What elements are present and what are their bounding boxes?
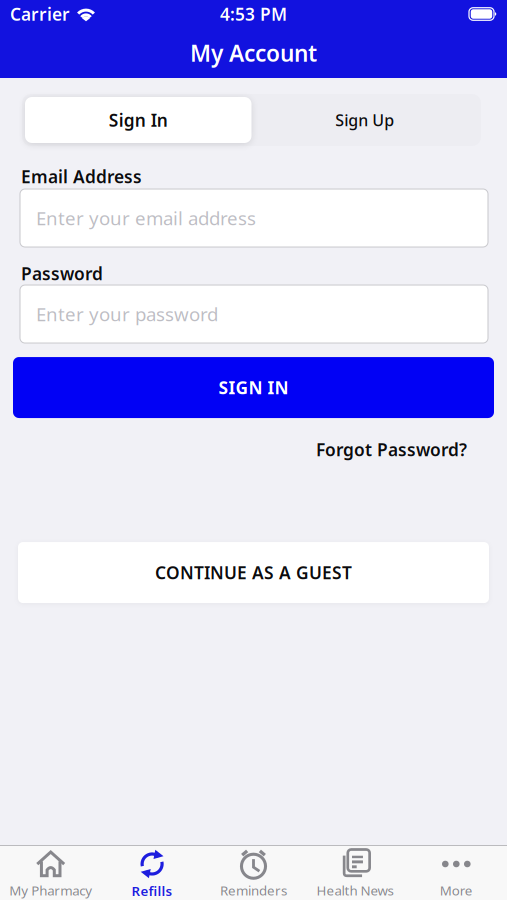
- button[interactable]: CONTINUE AS A GUEST: [18, 542, 489, 603]
- button[interactable]: More: [406, 846, 507, 899]
- staticText: Reminders: [220, 881, 287, 899]
- button[interactable]: Health News: [304, 846, 406, 899]
- staticText: My Pharmacy: [9, 881, 92, 899]
- staticText: Refills: [132, 882, 173, 900]
- staticText: CONTINUE AS A GUEST: [155, 561, 352, 584]
- staticText: Email Address: [21, 165, 142, 188]
- staticText: Carrier: [10, 2, 70, 25]
- staticText: 4:53 PM: [220, 2, 287, 25]
- button[interactable]: Sign In: [25, 97, 251, 143]
- button[interactable]: Sign Up: [251, 97, 478, 143]
- staticText: My Account: [190, 38, 317, 68]
- staticText: SIGN IN: [218, 376, 288, 399]
- staticText: Health News: [316, 881, 393, 899]
- button[interactable]: SIGN IN: [13, 357, 494, 418]
- staticText: Enter your email address: [36, 206, 256, 230]
- button[interactable]: My Pharmacy: [0, 846, 101, 899]
- staticText: Sign In: [109, 108, 168, 131]
- staticText: Password: [21, 262, 103, 285]
- staticText: Forgot Password?: [316, 438, 467, 461]
- button[interactable]: Forgot Password?: [316, 438, 467, 461]
- button[interactable]: Refills: [101, 846, 203, 900]
- staticText: More: [440, 881, 473, 899]
- button[interactable]: Reminders: [203, 846, 304, 899]
- staticText: Enter your password: [36, 302, 218, 326]
- staticText: Sign Up: [335, 109, 394, 131]
